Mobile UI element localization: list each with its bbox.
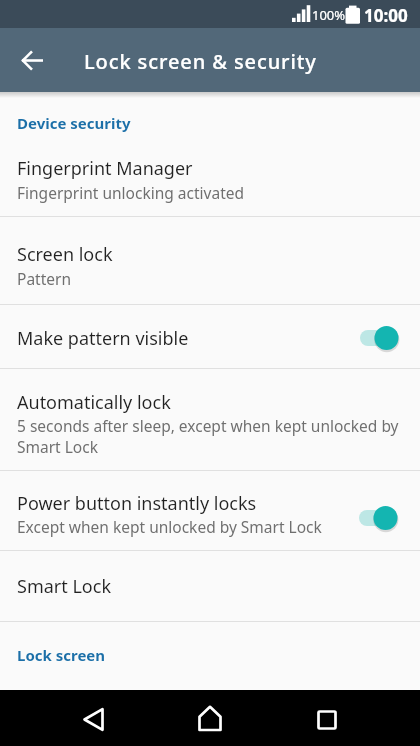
staticText: Screen lock <box>17 242 113 267</box>
staticText: Except when kept unlocked by Smart Lock <box>17 516 322 537</box>
staticText: 5 seconds after sleep, except when kept … <box>17 415 399 458</box>
button[interactable]: Automatically lock <box>0 369 420 470</box>
staticText: Lock screen <box>17 645 106 665</box>
staticText: Smart Lock <box>17 574 111 599</box>
button[interactable] <box>190 698 230 738</box>
staticText: Pattern <box>17 268 71 289</box>
staticText: Fingerprint Manager <box>17 156 193 181</box>
button[interactable] <box>75 700 115 740</box>
button[interactable]: Make pattern visible <box>0 305 420 368</box>
button[interactable] <box>307 698 347 738</box>
staticText: Automatically lock <box>17 390 171 415</box>
button[interactable]: Screen lock <box>0 217 420 304</box>
button[interactable]: Smart Lock <box>0 551 420 621</box>
button[interactable]: Power button instantly locks <box>0 471 420 550</box>
button[interactable] <box>16 48 48 72</box>
button[interactable] <box>357 504 401 532</box>
staticText: 100% <box>312 6 346 24</box>
staticText: Device security <box>17 113 131 133</box>
staticText: 10:00 <box>364 4 408 27</box>
staticText: Power button instantly locks <box>17 491 257 516</box>
staticText: Make pattern visible <box>17 326 189 351</box>
button[interactable]: Fingerprint Manager <box>0 145 420 216</box>
staticText: Fingerprint unlocking activated <box>17 182 244 203</box>
button[interactable] <box>358 324 402 352</box>
staticText: Lock screen & security <box>84 48 317 75</box>
